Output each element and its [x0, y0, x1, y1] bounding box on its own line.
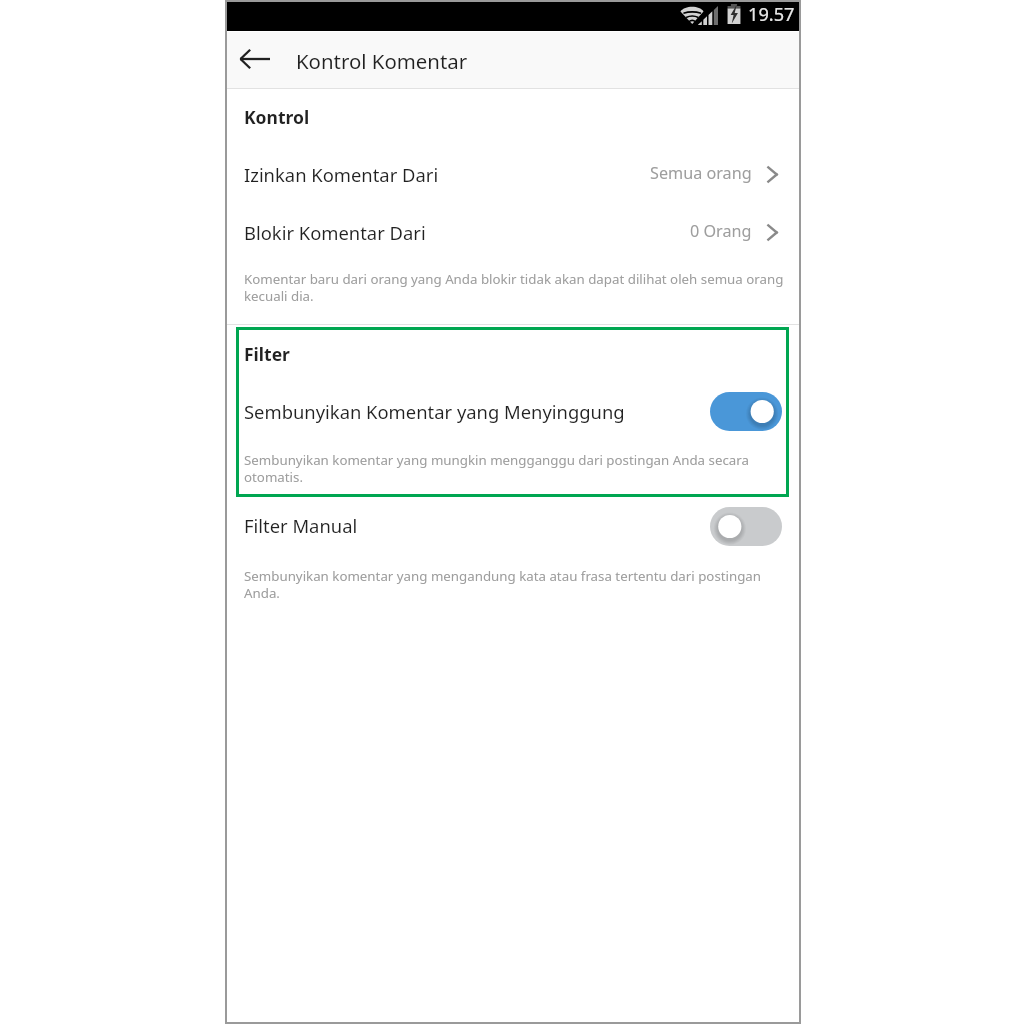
staticText: Filter Manual	[244, 513, 358, 538]
staticText: Sembunyikan komentar yang mungkin mengga…	[244, 451, 769, 486]
staticText: 0 Orang	[690, 220, 752, 242]
button[interactable]: Izinkan Komentar Dari	[225, 156, 801, 206]
staticText: Filter	[244, 342, 290, 366]
button[interactable]: Blokir Komentar Dari	[225, 214, 801, 264]
staticText: Izinkan Komentar Dari	[244, 162, 439, 187]
staticText: Kontrol	[244, 105, 310, 129]
button[interactable]: Switch on	[710, 392, 782, 431]
staticText: Sembunyikan komentar yang mengandung kat…	[244, 567, 790, 602]
button[interactable]: Back	[231, 36, 277, 82]
staticText: Komentar baru dari orang yang Anda bloki…	[244, 270, 790, 305]
staticText: 19.57	[748, 2, 795, 27]
staticText: Sembunyikan Komentar yang Menyinggung	[244, 399, 625, 424]
button[interactable]: Sembunyikan Komentar yang Menyinggung	[236, 387, 789, 436]
button[interactable]: Filter Manual	[225, 501, 801, 551]
button[interactable]: Switch off	[710, 507, 782, 546]
staticText: Kontrol Komentar	[296, 47, 468, 75]
staticText: Blokir Komentar Dari	[244, 220, 426, 245]
staticText: Semua orang	[650, 162, 752, 184]
